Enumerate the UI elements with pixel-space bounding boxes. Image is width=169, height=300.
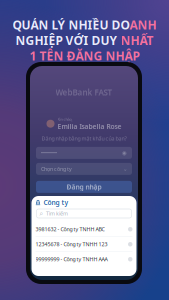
staticText: 99999999 - Công ty TNHH AAA: [35, 256, 107, 263]
button[interactable]: 99999999 - Công ty TNHH AAA: [31, 252, 136, 266]
staticText: 12345678 - Công ty TNHH 123: [35, 241, 107, 248]
staticText: Tìm kiếm: [46, 210, 68, 217]
staticText: Emilia Isabella Rose: [57, 122, 121, 131]
staticText: NHẤT: [120, 32, 153, 48]
staticText: 1 TÊN ĐĂNG NHẬP: [29, 48, 139, 64]
button[interactable]: Đăng nhập: [36, 181, 132, 193]
button[interactable]: 3981632 - Công ty TNHH ABC: [31, 222, 136, 236]
staticText: Công ty: [43, 198, 68, 207]
staticText: 3981632 - Công ty TNHH ABC: [35, 226, 104, 233]
staticText: ••••••••: [41, 149, 57, 156]
staticText: Xin chào,: [57, 117, 72, 122]
staticText: ⌄: [123, 166, 127, 172]
staticText: Chọn công ty: [41, 165, 72, 172]
staticText: ANH: [129, 17, 156, 33]
staticText: ⌕: [39, 210, 43, 217]
staticText: NGHIỆP VỚI DUY: [15, 32, 120, 48]
staticText: Đăng nhập: [66, 182, 101, 191]
staticText: ◉: [122, 150, 127, 156]
button[interactable]: 12345678 - Công ty TNHH 123: [31, 237, 136, 251]
staticText: QUẢN LÝ NHIỀU DO: [12, 17, 129, 33]
staticText: Đăng nhập bằng mật khẩu của bạn?: [41, 135, 126, 142]
staticText: WebBank FAST: [55, 87, 112, 98]
